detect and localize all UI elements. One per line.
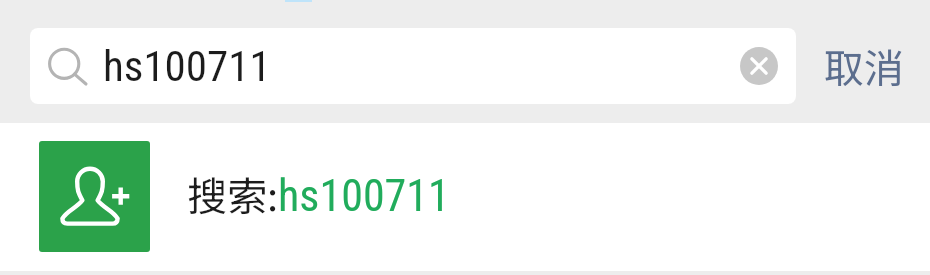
- button[interactable]: Clear search text: [731, 38, 787, 94]
- button[interactable]: 取消: [797, 28, 930, 104]
- button[interactable]: 搜索:hs100711: [0, 123, 930, 271]
- staticText: hs100711: [103, 41, 271, 91]
- button[interactable]: Search: [30, 28, 796, 104]
- staticText: 搜索:hs100711: [187, 165, 450, 223]
- other: Search: [48, 44, 92, 88]
- staticText: 取消: [824, 37, 904, 95]
